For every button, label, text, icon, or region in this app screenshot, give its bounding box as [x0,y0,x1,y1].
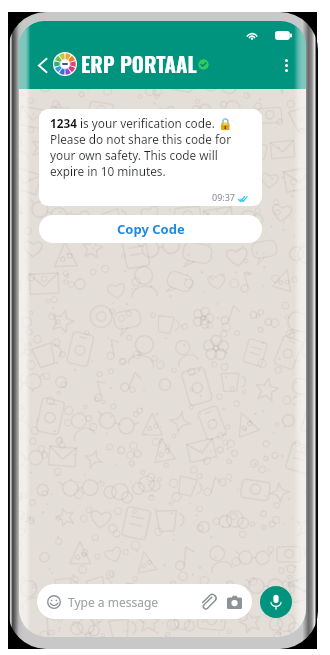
staticText: Copy Code [117,220,185,238]
staticText: ERP PORTAAL [81,48,197,79]
staticText: Type a message [68,594,159,610]
other: Attach [200,594,215,609]
other: Camera [227,595,242,609]
staticText: 09:37 [212,191,236,203]
button[interactable]: Back [30,51,54,79]
staticText: 1234 is your verification code. 🔒 Please… [50,115,233,179]
button[interactable]: Voice message [260,586,292,618]
button[interactable]: More options [272,51,300,79]
button[interactable]: Copy Code [39,215,262,243]
button[interactable]: Type a message [37,584,252,619]
